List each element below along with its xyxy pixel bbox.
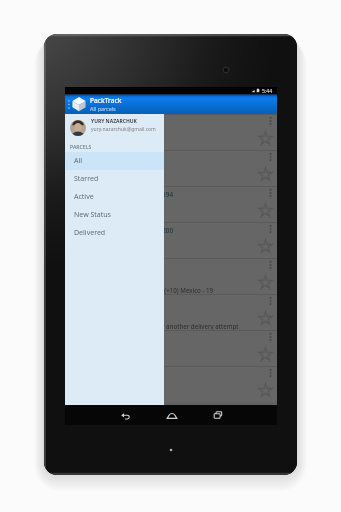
staticText: RR123456785BY bbox=[71, 118, 120, 127]
staticText: yury.nazarchuk@gmail.com bbox=[91, 126, 156, 133]
staticText: RB 1234 5678 9012 3456 7890 194 bbox=[71, 190, 174, 199]
staticText: Shipment bbox=[71, 129, 105, 139]
button[interactable]: Recents bbox=[206, 405, 229, 425]
staticText: YURY NAZARCHUK bbox=[91, 118, 137, 125]
button[interactable]: Home bbox=[160, 405, 183, 425]
staticText: Order 7781 bbox=[71, 165, 110, 175]
button[interactable]: RR123456785BY bbox=[65, 114, 277, 150]
staticText: Delivered bbox=[74, 228, 106, 238]
staticText: All parcels bbox=[90, 105, 116, 112]
staticText: Active bbox=[74, 192, 94, 202]
button[interactable]: NL99110023 bbox=[65, 366, 277, 402]
staticText: PARCELS bbox=[70, 143, 92, 150]
button[interactable]: EE77810044 bbox=[65, 294, 277, 330]
button[interactable]: UA45210098CN bbox=[65, 330, 277, 366]
staticText: Arrived at sorting center ISC NY (+10) M… bbox=[71, 286, 214, 294]
staticText: Notice left, item rescheduled for anothe… bbox=[71, 322, 239, 330]
button[interactable]: YURY NAZARCHUK bbox=[65, 114, 164, 141]
button[interactable]: Starred bbox=[65, 170, 164, 188]
staticText: New Status bbox=[74, 210, 111, 220]
button[interactable]: RB 1234 5678 9012 3456 7890 194 bbox=[65, 186, 277, 222]
button[interactable]: All bbox=[65, 152, 164, 170]
staticText: Starred bbox=[74, 174, 99, 184]
staticText: PackTrack bbox=[90, 96, 122, 105]
staticText: All bbox=[74, 156, 83, 166]
staticText: RA 9876 5432 1098 7654 3210 200 bbox=[71, 226, 174, 235]
button[interactable]: Active bbox=[65, 188, 164, 206]
button[interactable]: RA 9876 5432 1098 7654 3210 200 bbox=[65, 222, 277, 258]
button[interactable]: CP009944213NL bbox=[65, 150, 277, 186]
button[interactable]: Back bbox=[114, 405, 137, 425]
button[interactable]: New Status bbox=[65, 206, 164, 224]
staticText: CP009944213NL bbox=[71, 154, 121, 163]
staticText: 5:44 bbox=[262, 87, 273, 94]
button[interactable]: Delivered bbox=[65, 224, 164, 242]
button[interactable]: LZ55300112 bbox=[65, 258, 277, 294]
